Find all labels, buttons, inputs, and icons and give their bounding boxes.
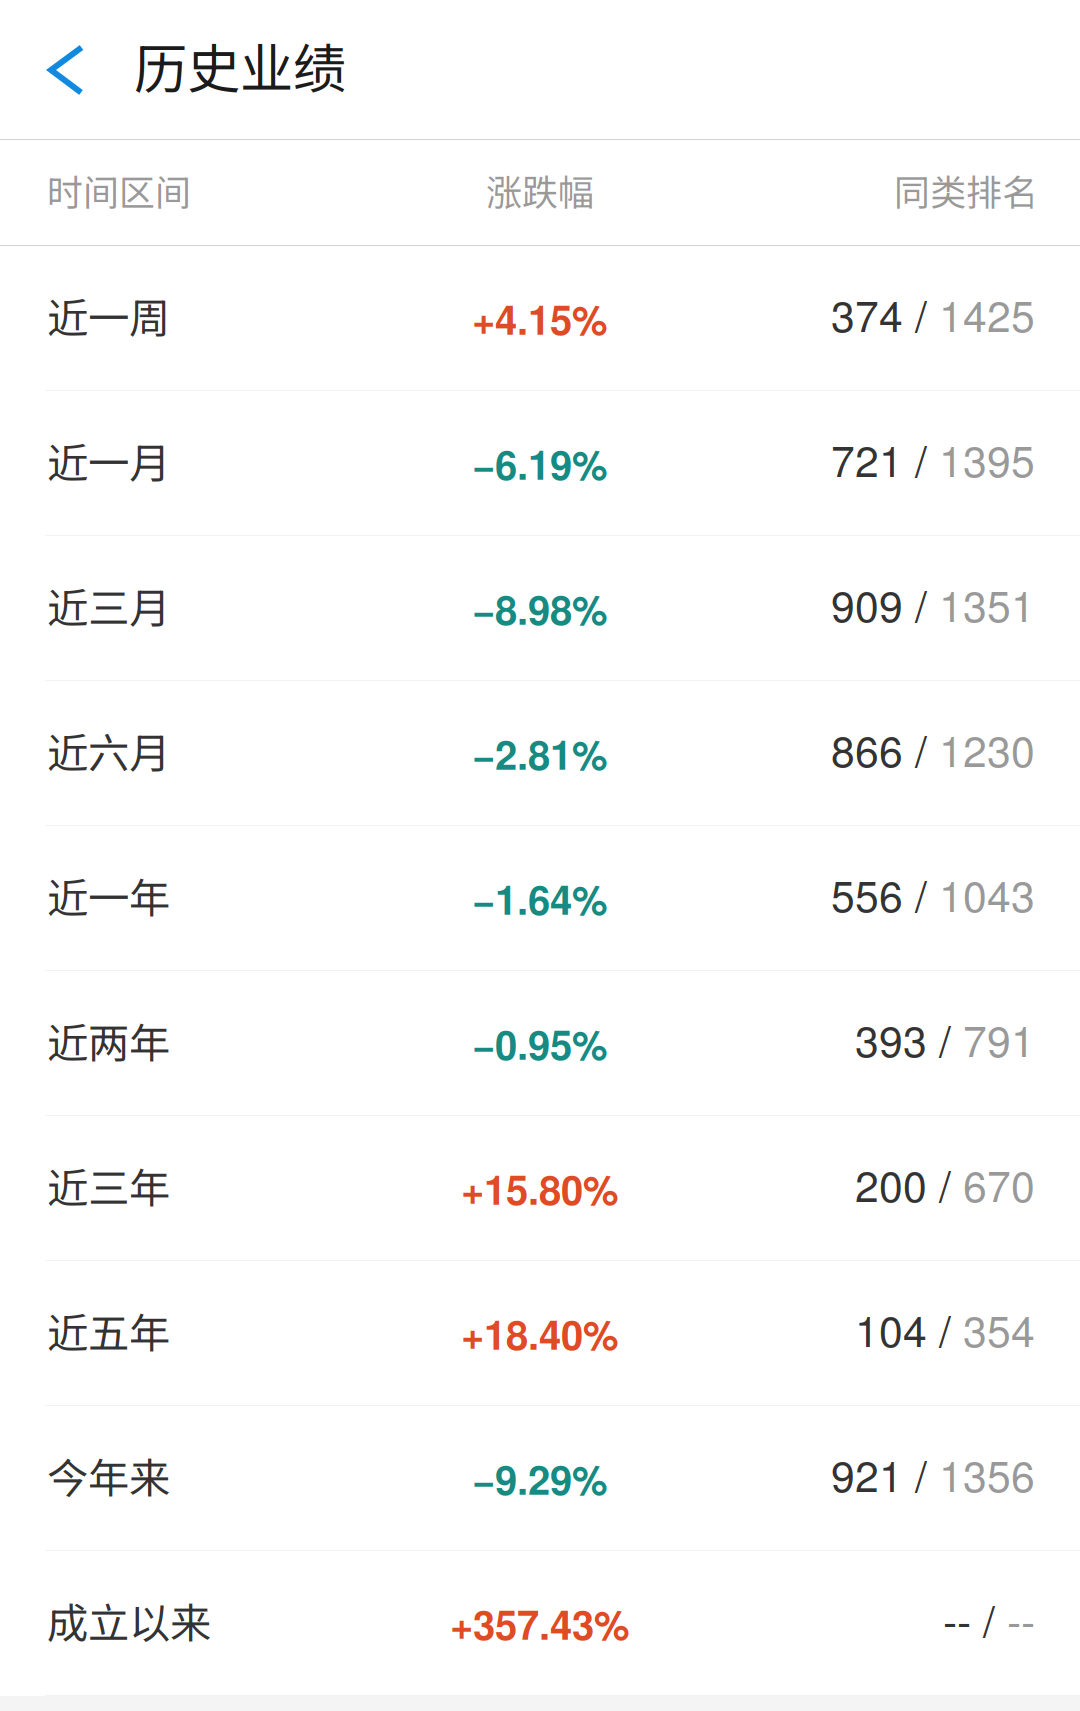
staticText: 393	[855, 1008, 927, 1069]
staticText: 近六月	[47, 721, 170, 780]
button[interactable]: Back	[16, 0, 116, 140]
staticText: 近五年	[47, 1301, 170, 1360]
staticText: /	[903, 1443, 939, 1504]
staticText: 近两年	[47, 1011, 170, 1070]
staticText: 1425	[939, 283, 1035, 344]
staticText: 670	[963, 1153, 1035, 1214]
staticText: 1356	[939, 1443, 1035, 1504]
staticText: 921	[831, 1443, 903, 1504]
staticText: +15.80%	[461, 1160, 619, 1217]
staticText: −0.95%	[472, 1015, 608, 1072]
staticText: /	[927, 1298, 963, 1359]
staticText: 721	[831, 428, 903, 489]
staticText: −9.29%	[472, 1450, 608, 1507]
staticText: 1230	[939, 718, 1035, 779]
staticText: 近一周	[47, 286, 170, 345]
staticText: /	[927, 1153, 963, 1214]
staticText: 近一月	[47, 431, 170, 490]
staticText: /	[971, 1588, 1007, 1649]
staticText: 200	[855, 1153, 927, 1214]
staticText: 1395	[939, 428, 1035, 489]
staticText: 909	[831, 573, 903, 634]
staticText: 791	[963, 1008, 1035, 1069]
staticText: 近一年	[47, 866, 170, 925]
staticText: +357.43%	[450, 1595, 630, 1652]
staticText: 1351	[939, 573, 1035, 634]
staticText: 近三月	[47, 576, 170, 635]
staticText: /	[903, 863, 939, 924]
staticText: 历史业绩	[134, 26, 346, 104]
staticText: --	[943, 1588, 971, 1649]
staticText: 1043	[939, 863, 1035, 924]
staticText: --	[1007, 1588, 1035, 1649]
staticText: 同类排名	[894, 164, 1038, 216]
staticText: /	[903, 283, 939, 344]
staticText: 时间区间	[47, 164, 191, 216]
staticText: −6.19%	[472, 435, 608, 492]
staticText: 556	[831, 863, 903, 924]
staticText: /	[927, 1008, 963, 1069]
staticText: −8.98%	[472, 580, 608, 637]
staticText: /	[903, 428, 939, 489]
staticText: /	[903, 718, 939, 779]
staticText: 成立以来	[47, 1591, 211, 1650]
staticText: 近三年	[47, 1156, 170, 1215]
staticText: 104	[855, 1298, 927, 1359]
staticText: 涨跌幅	[486, 164, 594, 216]
staticText: 866	[831, 718, 903, 779]
staticText: −1.64%	[472, 870, 608, 927]
staticText: −2.81%	[472, 725, 608, 782]
staticText: 今年来	[47, 1446, 170, 1505]
staticText: /	[903, 573, 939, 634]
staticText: +18.40%	[461, 1305, 619, 1362]
staticText: +4.15%	[472, 290, 608, 347]
staticText: 354	[963, 1298, 1035, 1359]
staticText: 374	[831, 283, 903, 344]
